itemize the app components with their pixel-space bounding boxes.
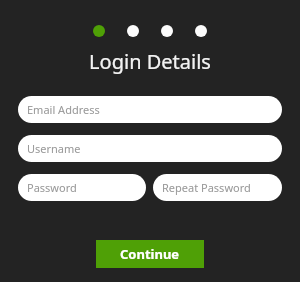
button[interactable]: Step	[161, 25, 173, 37]
button[interactable]: Continue	[96, 240, 204, 268]
button[interactable]: Repeat Password	[153, 174, 282, 201]
button[interactable]: Step	[127, 25, 139, 37]
staticText: Login Details	[0, 48, 300, 75]
button[interactable]: Current step	[93, 25, 105, 37]
staticText: Email Address	[27, 102, 100, 117]
button[interactable]: Step	[195, 25, 207, 37]
staticText: Username	[27, 141, 81, 156]
staticText: Password	[27, 180, 77, 195]
staticText: Repeat Password	[162, 180, 251, 195]
button[interactable]: Email Address	[18, 96, 282, 123]
button[interactable]: Password	[18, 174, 146, 201]
button[interactable]: Username	[18, 135, 282, 162]
staticText: Continue	[120, 245, 180, 263]
